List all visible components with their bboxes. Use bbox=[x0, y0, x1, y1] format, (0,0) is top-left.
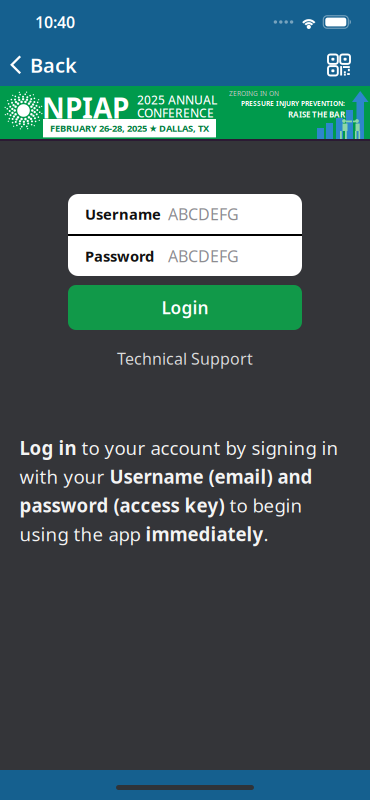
staticText: RAISE THE BAR bbox=[288, 109, 345, 120]
button[interactable]: Scan QR code bbox=[314, 44, 370, 86]
staticText: 10:40 bbox=[35, 11, 75, 33]
staticText: Log in to your account by signing in wit… bbox=[19, 435, 338, 546]
button[interactable]: Back bbox=[0, 44, 91, 86]
staticText: Username bbox=[85, 204, 161, 224]
button[interactable]: Technical Support bbox=[105, 342, 265, 375]
staticText: Technical Support bbox=[117, 348, 253, 369]
staticText: Back bbox=[30, 52, 77, 78]
staticText: 2025 ANNUAL bbox=[137, 92, 217, 108]
staticText: CONFERENCE bbox=[137, 105, 214, 121]
staticText: ABCDEFG bbox=[168, 203, 239, 225]
staticText: ABCDEFG bbox=[168, 245, 239, 267]
staticText: Password bbox=[85, 246, 154, 266]
button[interactable]: Login bbox=[68, 285, 302, 330]
staticText: NPIAP bbox=[42, 89, 129, 126]
staticText: PRESSURE INJURY PREVENTION: bbox=[241, 99, 345, 108]
staticText: ZEROING IN ON bbox=[229, 89, 279, 98]
staticText: FEBRUARY 26-28, 2025 ★ DALLAS, TX bbox=[50, 122, 209, 134]
staticText: Login bbox=[161, 296, 208, 319]
